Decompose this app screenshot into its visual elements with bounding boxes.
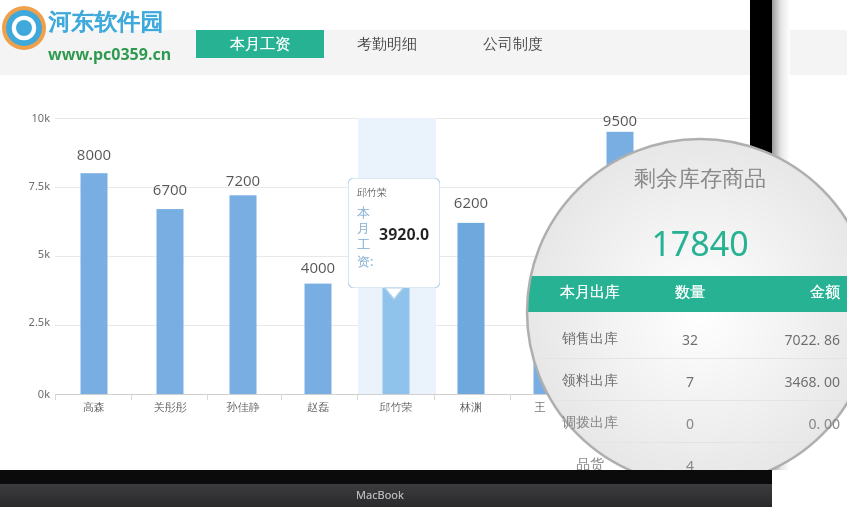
staticText: 赵磊: [288, 400, 348, 414]
staticText: 销售出库: [530, 330, 650, 348]
staticText: 本月工资: [230, 35, 290, 54]
other: Site logo: [2, 6, 46, 50]
staticText: 0k: [8, 386, 50, 401]
staticText: 7: [650, 372, 730, 391]
staticText: 数量: [650, 283, 730, 302]
staticText: 5k: [8, 246, 50, 261]
staticText: 高森: [64, 400, 124, 414]
staticText: 17840: [560, 220, 840, 266]
staticText: 6200: [441, 192, 501, 212]
staticText: 关彤彤: [140, 400, 200, 414]
staticText: 邱竹荣: [357, 186, 387, 199]
staticText: 本: [357, 204, 370, 220]
staticText: 资:: [357, 252, 374, 270]
staticText: 孙佳静: [213, 400, 273, 414]
staticText: 林渊: [441, 400, 501, 414]
staticText: 6700: [140, 179, 200, 199]
staticText: 4: [650, 456, 730, 475]
staticText: 公司制度: [483, 35, 543, 54]
staticText: 3468. 00: [730, 372, 840, 391]
staticText: 考勤明细: [357, 35, 417, 54]
staticText: 0: [650, 414, 730, 433]
staticText: 4000: [288, 257, 348, 277]
staticText: 品货: [530, 456, 650, 474]
staticText: 7.5k: [8, 178, 50, 193]
staticText: 本月出库: [530, 283, 650, 302]
button[interactable]: 考勤明细: [324, 30, 450, 58]
staticText: 月: [357, 220, 370, 236]
staticText: 0. 00: [730, 414, 840, 433]
staticText: www.pc0359.cn: [48, 43, 172, 65]
button[interactable]: 本月工资: [196, 30, 324, 58]
staticText: 王: [510, 400, 570, 414]
staticText: 7200: [213, 170, 273, 190]
staticText: MacBook: [0, 487, 760, 502]
staticText: 工: [357, 236, 370, 252]
staticText: 10k: [8, 110, 50, 125]
staticText: 调拨出库: [530, 414, 650, 432]
staticText: [730, 456, 840, 475]
staticText: 河东软件园: [48, 8, 163, 37]
staticText: 金额: [730, 283, 840, 302]
button[interactable]: 公司制度: [450, 30, 576, 58]
staticText: 32: [650, 330, 730, 349]
staticText: 2.5k: [8, 314, 50, 329]
staticText: 7022. 86: [730, 330, 840, 349]
staticText: 9500: [590, 110, 650, 130]
staticText: 邱竹荣: [366, 400, 426, 414]
staticText: 剩余库存商品: [560, 165, 840, 193]
staticText: 3920.0: [379, 223, 430, 245]
staticText: 领料出库: [530, 372, 650, 390]
staticText: 8000: [64, 144, 124, 164]
